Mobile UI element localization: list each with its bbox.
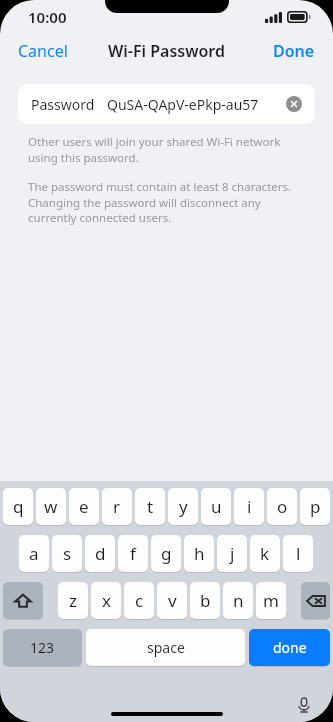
- staticText: z: [69, 589, 77, 612]
- button[interactable]: h: [184, 535, 214, 572]
- staticText: n: [233, 589, 244, 612]
- staticText: a: [29, 542, 39, 565]
- staticText: r: [113, 495, 121, 518]
- button[interactable]: d: [85, 535, 115, 572]
- staticText: m: [263, 589, 279, 612]
- staticText: p: [310, 495, 321, 518]
- staticText: s: [63, 542, 72, 565]
- button[interactable]: l: [283, 535, 313, 572]
- staticText: h: [194, 542, 205, 565]
- button[interactable]: 123: [3, 629, 82, 666]
- button[interactable]: s: [52, 535, 82, 572]
- staticText: k: [260, 542, 270, 565]
- staticText: o: [277, 495, 288, 518]
- staticText: e: [79, 495, 89, 518]
- staticText: Wi-Fi Password: [108, 40, 225, 62]
- staticText: c: [135, 589, 144, 612]
- button[interactable]: Shift: [3, 582, 43, 619]
- button[interactable]: e: [69, 488, 99, 525]
- button[interactable]: y: [168, 488, 198, 525]
- button[interactable]: i: [234, 488, 264, 525]
- staticText: l: [296, 542, 301, 565]
- button[interactable]: Clear text: [286, 96, 302, 112]
- staticText: d: [95, 542, 106, 565]
- button[interactable]: u: [201, 488, 231, 525]
- staticText: 123: [30, 638, 55, 657]
- button[interactable]: b: [190, 582, 220, 619]
- button[interactable]: t: [135, 488, 165, 525]
- button[interactable]: done: [249, 629, 330, 666]
- staticText: f: [130, 542, 136, 565]
- staticText: The password must contain at least 8 cha…: [28, 179, 305, 225]
- button[interactable]: space: [86, 629, 245, 666]
- staticText: g: [161, 542, 172, 565]
- button[interactable]: n: [223, 582, 253, 619]
- staticText: j: [230, 542, 235, 565]
- staticText: Done: [273, 40, 315, 62]
- button[interactable]: c: [124, 582, 154, 619]
- button[interactable]: o: [267, 488, 297, 525]
- staticText: space: [147, 638, 185, 657]
- staticText: y: [179, 495, 188, 518]
- button[interactable]: f: [118, 535, 148, 572]
- button[interactable]: Dictation: [291, 692, 317, 718]
- button[interactable]: q: [3, 488, 33, 525]
- button[interactable]: j: [217, 535, 247, 572]
- button[interactable]: g: [151, 535, 181, 572]
- button[interactable]: z: [58, 582, 88, 619]
- staticText: t: [147, 495, 154, 518]
- button[interactable]: x: [91, 582, 121, 619]
- button[interactable]: Cancel: [10, 36, 76, 66]
- staticText: i: [247, 495, 252, 518]
- button[interactable]: Done: [265, 36, 323, 66]
- staticText: q: [13, 495, 24, 518]
- button[interactable]: r: [102, 488, 132, 525]
- button[interactable]: a: [19, 535, 49, 572]
- button[interactable]: Backspace: [301, 582, 330, 619]
- staticText: x: [102, 589, 111, 612]
- staticText: 10:00: [28, 7, 67, 27]
- button[interactable]: w: [36, 488, 66, 525]
- staticText: w: [44, 495, 58, 518]
- staticText: b: [200, 589, 211, 612]
- button[interactable]: p: [300, 488, 330, 525]
- button[interactable]: v: [157, 582, 187, 619]
- staticText: Password: [31, 95, 95, 114]
- staticText: Cancel: [18, 40, 68, 62]
- staticText: QuSA-QApV-ePkp-au57: [107, 95, 259, 114]
- button[interactable]: m: [256, 582, 286, 619]
- button[interactable]: Password: [18, 84, 315, 124]
- staticText: done: [273, 638, 307, 657]
- staticText: u: [211, 495, 222, 518]
- staticText: Other users will join your shared Wi-Fi …: [28, 134, 305, 165]
- staticText: v: [168, 589, 177, 612]
- button[interactable]: k: [250, 535, 280, 572]
